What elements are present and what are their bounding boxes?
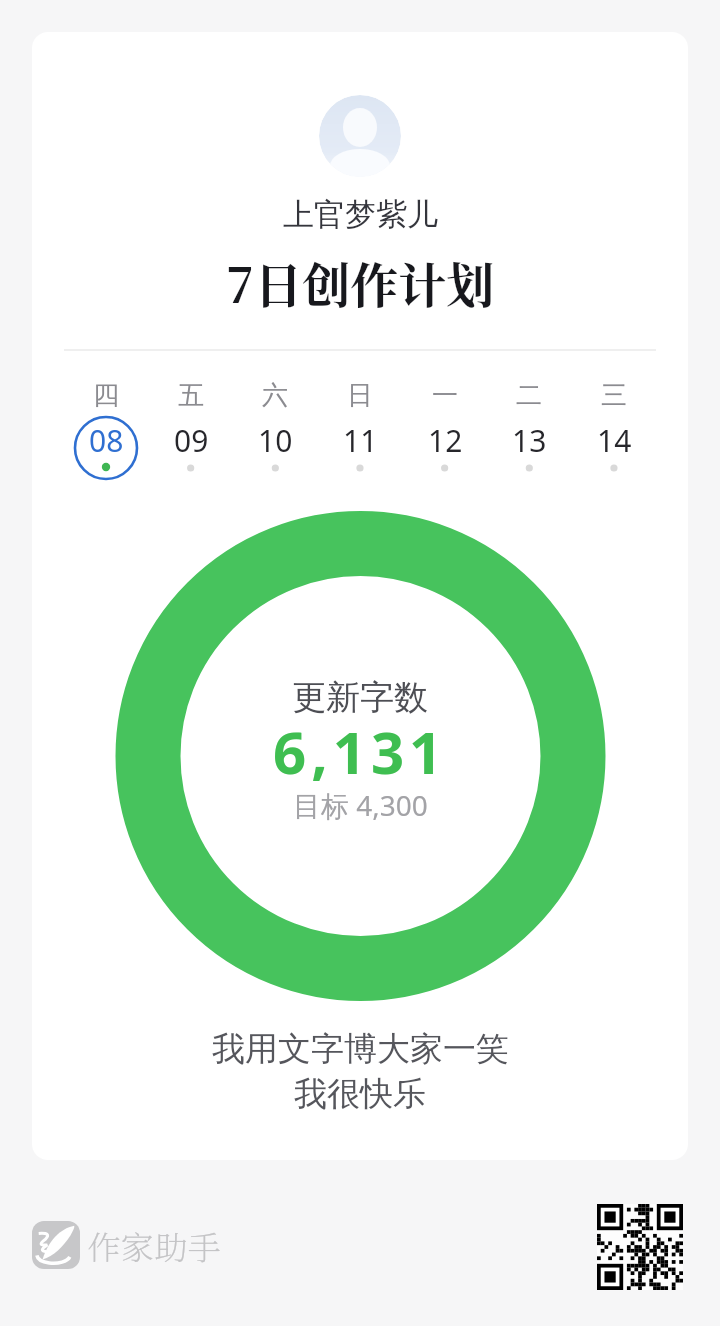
staticText: 目标 4,300	[293, 786, 428, 824]
staticText: 六	[262, 379, 288, 412]
staticText: 日	[347, 379, 373, 412]
button[interactable]	[32, 32, 688, 1160]
button[interactable]	[237, 378, 313, 483]
button[interactable]	[597, 1204, 683, 1290]
staticText: 我很快乐	[294, 1073, 426, 1115]
staticText: 五	[178, 379, 204, 412]
staticText: 三	[601, 379, 627, 412]
staticText: 13	[512, 420, 547, 461]
staticText: 12	[428, 420, 463, 461]
staticText: 08	[89, 420, 124, 461]
staticText: 10	[258, 420, 293, 461]
staticText: 14	[597, 420, 632, 461]
staticText: 二	[516, 379, 542, 412]
button[interactable]	[322, 378, 398, 483]
staticText: 作家助手	[87, 1222, 221, 1269]
button[interactable]	[491, 378, 567, 483]
staticText: 上官梦紫儿	[283, 195, 438, 234]
button[interactable]	[32, 1221, 80, 1269]
staticText: 6,131	[273, 712, 448, 791]
staticText: 11	[343, 420, 378, 461]
button[interactable]	[153, 378, 229, 483]
staticText: 更新字数	[292, 676, 428, 719]
button[interactable]	[407, 378, 483, 483]
staticText: 四	[93, 379, 119, 412]
staticText: 7日创作计划	[226, 248, 495, 317]
staticText: 一	[432, 379, 458, 412]
staticText: 09	[174, 420, 209, 461]
button[interactable]	[576, 378, 652, 483]
button[interactable]	[68, 378, 144, 483]
staticText: 我用文字博大家一笑	[212, 1028, 509, 1070]
